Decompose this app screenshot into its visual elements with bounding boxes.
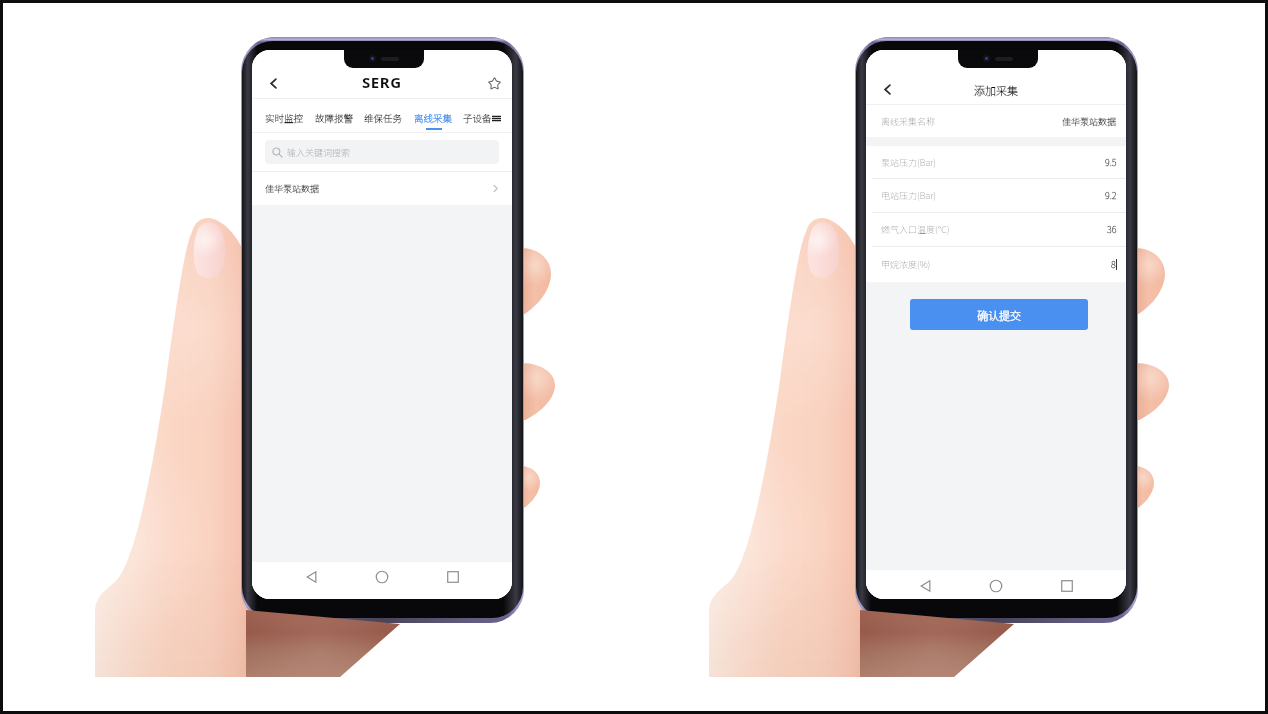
button[interactable]: 离线采集名称 [866,105,1126,137]
button[interactable]: Back [301,566,323,588]
staticText: 燃气入口温度(℃) [881,223,950,236]
staticText: 36 [1107,223,1117,236]
button[interactable]: 确认提交 [910,299,1088,330]
staticText: 离线采集名称 [881,115,936,128]
staticText: 9.5 [1105,156,1117,169]
staticText: 离线采集 [414,111,453,125]
button[interactable]: Home [371,566,393,588]
staticText: 故障报警 [315,111,354,125]
button[interactable]: Back [882,84,893,95]
staticText: 确认提交 [977,307,1021,323]
button[interactable]: 输入关键词搜索 [265,140,499,164]
button[interactable]: 离线采集 [414,111,453,130]
staticText: 佳华泵站数据 [1062,115,1117,128]
staticText: 泵站压力(Bar) [881,156,936,169]
staticText: 电站压力(Bar) [881,189,936,202]
staticText: SERG [362,72,402,92]
staticText: 9.2 [1105,189,1117,202]
button[interactable]: Back [268,78,279,89]
staticText: 佳华泵站数据 [265,182,320,195]
button[interactable]: 实时监控 [265,111,304,130]
staticText: 输入关键词搜索 [287,146,351,159]
button[interactable]: Favorite [488,77,501,90]
button[interactable]: 子设备 [463,111,501,125]
button[interactable]: 甲烷浓度(%) [866,247,1126,282]
button[interactable]: 佳华泵站数据 [252,172,512,205]
staticText: 子设备 [463,111,492,125]
button[interactable]: 电站压力(Bar) [866,179,1126,212]
button[interactable]: 故障报警 [315,111,354,130]
button[interactable]: 泵站压力(Bar) [866,146,1126,178]
staticText: 添加采集 [974,82,1018,98]
staticText: 8 [1111,258,1116,271]
button[interactable]: Home [985,575,1007,597]
staticText: 实时监控 [265,111,304,125]
button[interactable]: Recents [442,566,464,588]
staticText: 甲烷浓度(%) [881,258,931,271]
button[interactable]: 维保任务 [364,111,403,130]
staticText: 维保任务 [364,111,403,125]
button[interactable]: Back [915,575,937,597]
button[interactable]: Recents [1056,575,1078,597]
button[interactable]: 燃气入口温度(℃) [866,213,1126,246]
